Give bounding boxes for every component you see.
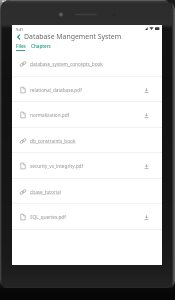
staticText: security_vs_integrity.pdf bbox=[30, 163, 84, 169]
button[interactable]: normalization.pdf bbox=[12, 102, 162, 128]
button[interactable]: SQL_queries.pdf bbox=[12, 204, 162, 230]
staticText: cbase_tutorial bbox=[30, 189, 61, 195]
button[interactable]: Back bbox=[14, 32, 23, 41]
button[interactable]: Download bbox=[142, 162, 150, 170]
staticText: normalization.pdf bbox=[30, 112, 70, 118]
staticText: database_system_concepts_book bbox=[30, 61, 103, 67]
button[interactable]: Chapters bbox=[31, 43, 51, 49]
staticText: Database Mangement System bbox=[24, 32, 122, 41]
button[interactable]: db_constraints_book bbox=[12, 128, 162, 153]
staticText: db_constraints_book bbox=[30, 138, 76, 144]
staticText: Chapters bbox=[31, 43, 51, 49]
staticText: Files bbox=[16, 43, 26, 49]
button[interactable]: relational_database.pdf bbox=[12, 77, 162, 102]
button[interactable]: security_vs_integrity.pdf bbox=[12, 153, 162, 179]
button[interactable]: database_system_concepts_book bbox=[12, 51, 162, 77]
button[interactable]: Files bbox=[16, 43, 26, 49]
button[interactable]: Download bbox=[142, 86, 150, 94]
button[interactable]: Download bbox=[142, 111, 150, 119]
button[interactable]: Download bbox=[142, 213, 150, 221]
staticText: SQL_queries.pdf bbox=[30, 214, 66, 220]
button[interactable]: cbase_tutorial bbox=[12, 179, 162, 204]
staticText: relational_database.pdf bbox=[30, 87, 82, 93]
staticText: 9:41 bbox=[16, 27, 24, 32]
